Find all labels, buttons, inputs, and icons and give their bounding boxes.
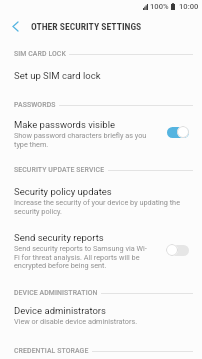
staticText: 100% [150, 2, 169, 11]
button[interactable]: Send security reports [0, 232, 202, 269]
staticText: View or disable device administrators. [14, 317, 138, 326]
button[interactable]: Make passwords visible [0, 119, 202, 148]
staticText: SIM CARD LOCK [14, 50, 66, 58]
staticText: Set up SIM card lock [14, 70, 101, 81]
button[interactable]: Set up SIM card lock [0, 68, 202, 82]
staticText: PASSWORDS [14, 101, 56, 109]
staticText: Security policy updates [14, 186, 112, 197]
staticText: Send security reports [14, 232, 104, 243]
staticText: Make passwords visible [14, 119, 115, 130]
button[interactable]: Device administrators [0, 305, 202, 326]
staticText: Increase the security of your device by … [14, 198, 188, 215]
staticText: OTHER SECURITY SETTINGS [31, 21, 142, 32]
staticText: CREDENTIAL STORAGE [14, 347, 89, 355]
staticText: Send security reports to Samsung via Wi-… [14, 244, 150, 269]
staticText: DEVICE ADMINISTRATION [14, 289, 98, 297]
staticText: Device administrators [14, 305, 106, 316]
button[interactable]: Switch off [166, 244, 189, 256]
button[interactable]: Switch on [166, 126, 189, 138]
button[interactable]: Security policy updates [0, 186, 202, 215]
button[interactable]: Navigate up [0, 14, 31, 39]
staticText: SECURITY UPDATE SERVICE [14, 166, 105, 174]
staticText: 10:00 [179, 2, 199, 11]
staticText: Show password characters briefly as you … [14, 131, 154, 148]
